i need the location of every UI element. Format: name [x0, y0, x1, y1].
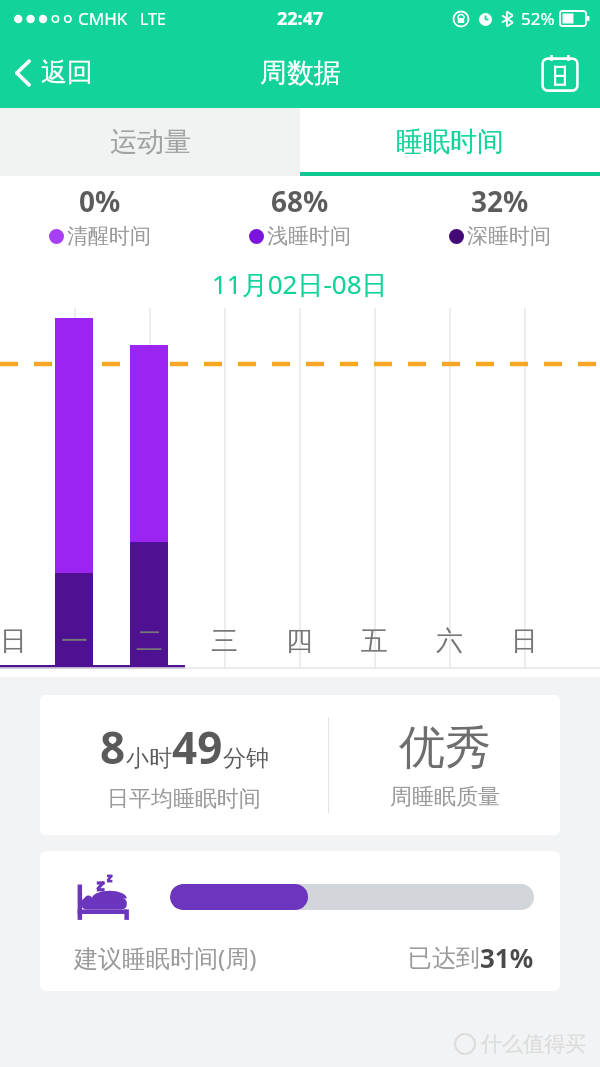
staticText: 31%	[480, 940, 534, 975]
staticText: 四	[286, 624, 313, 658]
button[interactable]: 建议睡眠时间(周)	[40, 851, 560, 991]
staticText: 返回	[41, 56, 93, 89]
staticText: 浅睡时间	[267, 223, 351, 249]
staticText: 日	[511, 624, 538, 658]
staticText: 三	[211, 624, 238, 658]
staticText: 六	[436, 624, 463, 658]
staticText: 运动量	[110, 125, 191, 159]
staticText: 11月02日-08日	[212, 266, 388, 302]
staticText: 深睡时间	[467, 223, 551, 249]
staticText: CMHK	[78, 7, 128, 30]
staticText: 周数据	[260, 56, 341, 90]
button[interactable]: 运动量	[0, 108, 300, 176]
staticText: 68%	[271, 182, 329, 220]
staticText: 日平均睡眠时间	[107, 785, 261, 813]
staticText: 小时	[126, 744, 172, 773]
staticText: 一	[61, 624, 88, 658]
staticText: 22:47	[277, 6, 324, 31]
staticText: LTE	[140, 8, 166, 30]
staticText: 什么值得买	[481, 1031, 586, 1057]
staticText: 建议睡眠时间(周)	[74, 941, 257, 974]
staticText: 49	[172, 717, 223, 777]
staticText: 睡眠时间	[396, 125, 504, 159]
staticText: 分钟	[223, 744, 269, 773]
button[interactable]: 睡眠时间	[300, 108, 600, 176]
button[interactable]: 返回	[0, 48, 109, 97]
staticText: 周睡眠质量	[390, 783, 500, 811]
staticText: 优秀	[399, 719, 491, 777]
staticText: 52%	[521, 7, 555, 30]
staticText: 清醒时间	[67, 223, 151, 249]
staticText: 已达到	[408, 943, 480, 973]
staticText: 8	[100, 717, 126, 777]
staticText: 0%	[79, 182, 121, 220]
staticText: 五	[361, 624, 388, 658]
button[interactable]: 8	[40, 695, 560, 835]
button[interactable]: Month view	[534, 47, 586, 99]
staticText: 32%	[471, 182, 529, 220]
staticText: 二	[136, 624, 163, 658]
staticText: 日	[0, 624, 27, 658]
